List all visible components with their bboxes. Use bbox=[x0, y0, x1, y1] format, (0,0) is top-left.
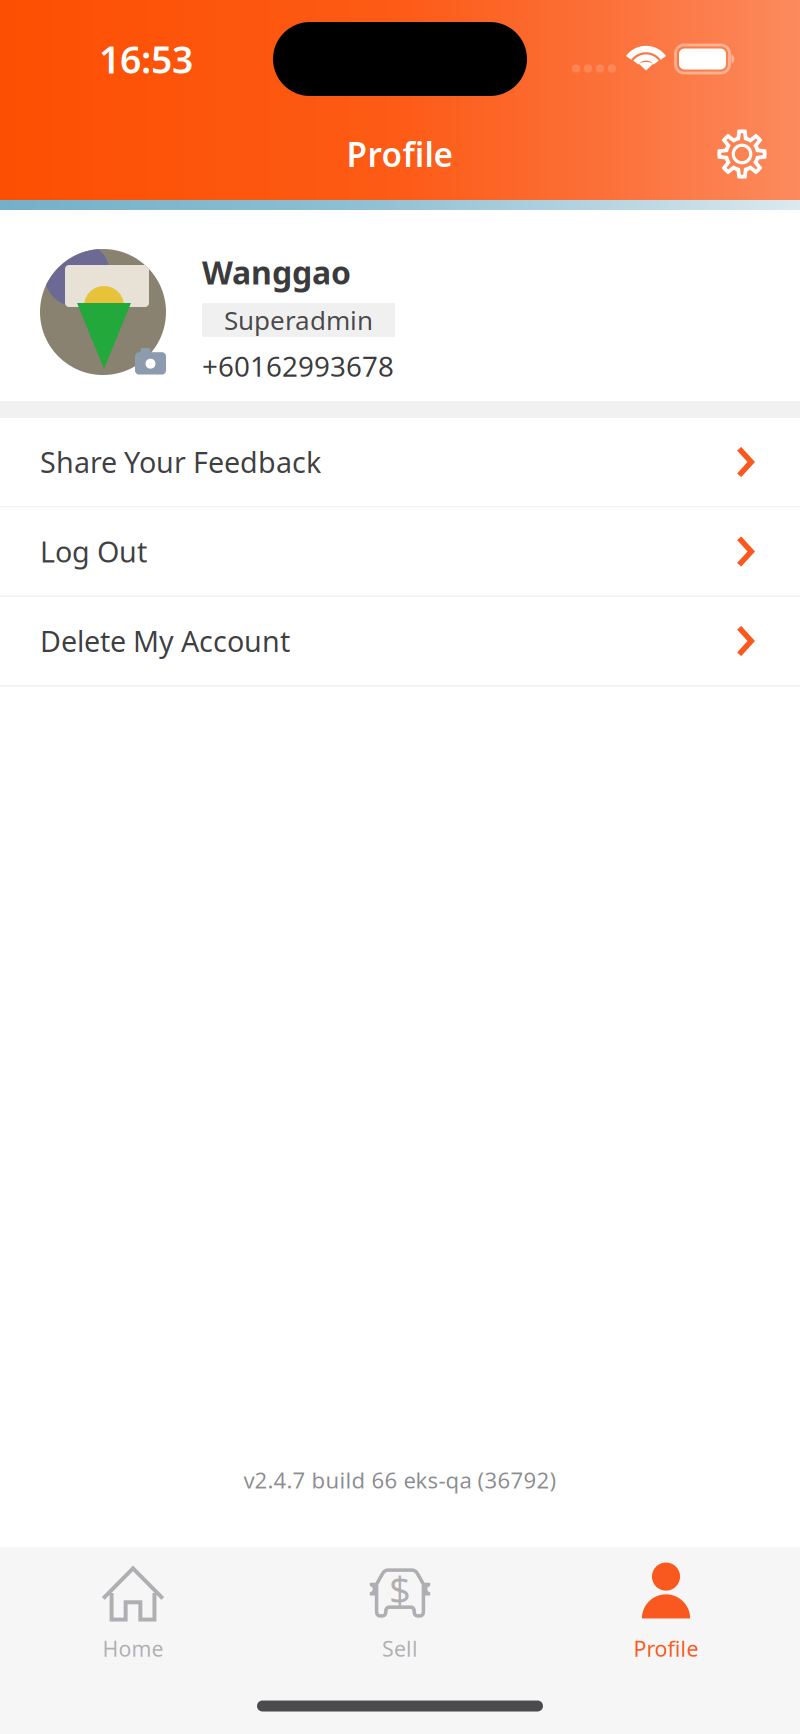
button[interactable]: $ bbox=[267, 1547, 533, 1665]
button[interactable]: Home bbox=[0, 1547, 266, 1665]
staticText: 16:53 bbox=[99, 34, 193, 84]
staticText: Home bbox=[102, 1634, 163, 1663]
staticText: Log Out bbox=[40, 532, 147, 571]
staticText: Sell bbox=[382, 1634, 418, 1663]
staticText: Superadmin bbox=[224, 302, 373, 338]
staticText: v2.4.7 build 66 eks-qa (36792) bbox=[243, 1465, 556, 1495]
button[interactable]: Delete My Account bbox=[0, 597, 800, 686]
button[interactable]: Settings bbox=[704, 116, 780, 192]
staticText: Delete My Account bbox=[40, 621, 290, 660]
staticText: Wanggao bbox=[202, 250, 351, 294]
button[interactable]: Share Your Feedback bbox=[0, 418, 800, 507]
staticText: Share Your Feedback bbox=[40, 442, 321, 481]
staticText: Profile bbox=[346, 131, 453, 177]
staticText: +60162993678 bbox=[202, 347, 394, 385]
staticText: $ bbox=[389, 1564, 411, 1616]
button[interactable]: Log Out bbox=[0, 507, 800, 597]
button[interactable]: Profile bbox=[533, 1547, 799, 1665]
staticText: Profile bbox=[633, 1634, 698, 1663]
